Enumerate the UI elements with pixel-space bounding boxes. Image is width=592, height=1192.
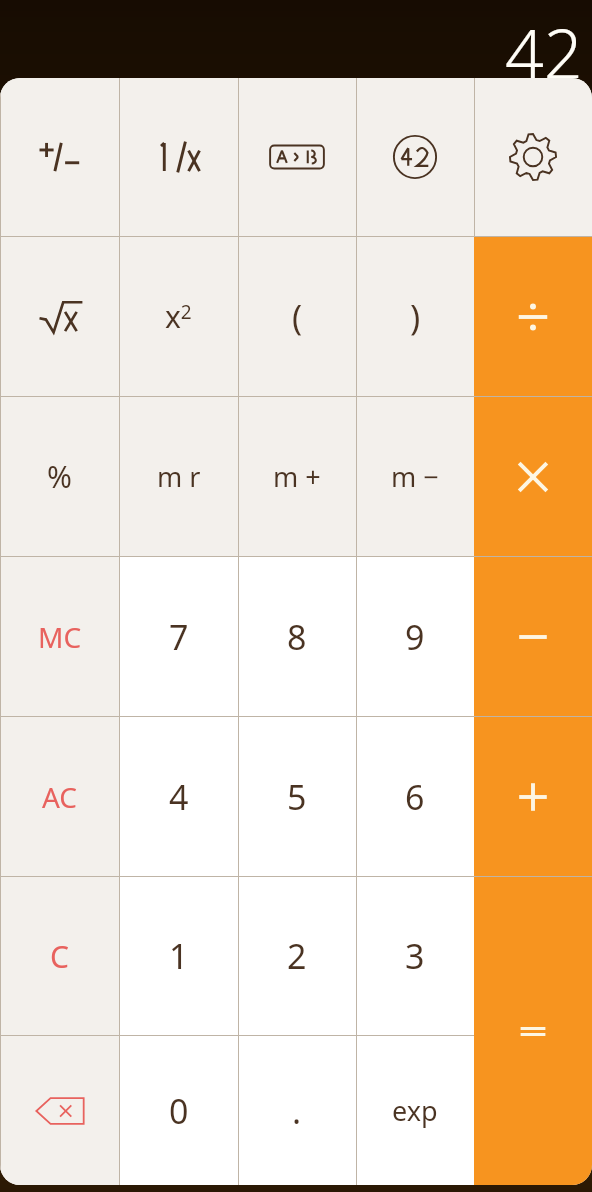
button[interactable]: Constant 42 <box>356 78 474 236</box>
staticText: AC <box>42 778 78 816</box>
staticText: 5 <box>287 774 307 820</box>
staticText: 7 <box>169 614 189 660</box>
staticText: m r <box>157 458 201 495</box>
button[interactable]: 2 <box>238 877 356 1035</box>
staticText: m + <box>273 458 321 495</box>
button[interactable]: Equals <box>474 877 592 1185</box>
button[interactable]: exp <box>356 1036 474 1185</box>
staticText: 3 <box>405 933 425 979</box>
staticText: x2 <box>165 296 192 337</box>
button[interactable]: Reciprocal <box>119 78 238 236</box>
button[interactable]: 1 <box>119 877 238 1035</box>
staticText: 2 <box>287 933 307 979</box>
staticText: 9 <box>405 614 425 660</box>
button[interactable]: 6 <box>356 717 474 876</box>
button[interactable]: 8 <box>238 557 356 716</box>
staticText: MC <box>38 618 82 656</box>
button[interactable]: 0 <box>119 1036 238 1185</box>
button[interactable]: Settings <box>474 78 592 236</box>
button[interactable]: AC <box>0 717 119 876</box>
staticText: 8 <box>287 614 307 660</box>
staticText: 1 <box>169 933 189 979</box>
button[interactable]: 4 <box>119 717 238 876</box>
button[interactable]: C <box>0 877 119 1035</box>
button[interactable]: 3 <box>356 877 474 1035</box>
button[interactable]: ) <box>356 237 474 396</box>
button[interactable]: Convert A to B <box>238 78 356 236</box>
button[interactable]: m + <box>238 397 356 556</box>
staticText: 6 <box>405 774 425 820</box>
button[interactable]: Minus <box>474 557 592 716</box>
button[interactable]: x2 <box>119 237 238 396</box>
button[interactable]: . <box>238 1036 356 1185</box>
button[interactable]: Plus minus <box>0 78 119 236</box>
button[interactable]: MC <box>0 557 119 716</box>
staticText: exp <box>392 1092 438 1129</box>
button[interactable]: % <box>0 397 119 556</box>
staticText: 42 <box>505 6 583 78</box>
button[interactable]: ( <box>238 237 356 396</box>
staticText: ) <box>410 294 421 340</box>
button[interactable]: 7 <box>119 557 238 716</box>
button[interactable]: Backspace <box>0 1036 119 1185</box>
button[interactable]: Plus <box>474 717 592 876</box>
staticText: 4 <box>169 774 189 820</box>
button[interactable]: 9 <box>356 557 474 716</box>
button[interactable]: Divide <box>474 237 592 396</box>
button[interactable]: m r <box>119 397 238 556</box>
staticText: 0 <box>169 1088 189 1134</box>
staticText: m − <box>391 458 439 495</box>
staticText: . <box>292 1088 302 1134</box>
staticText: C <box>50 936 69 977</box>
staticText: ( <box>292 294 303 340</box>
button[interactable]: 5 <box>238 717 356 876</box>
button[interactable]: Square root <box>0 237 119 396</box>
staticText: % <box>47 456 72 497</box>
button[interactable]: m − <box>356 397 474 556</box>
button[interactable]: Multiply <box>474 397 592 556</box>
